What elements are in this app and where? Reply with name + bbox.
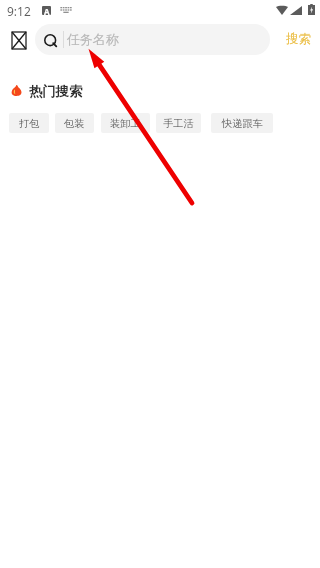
staticText: 打包 (19, 117, 40, 130)
button[interactable]: 装卸工 (101, 113, 150, 133)
button[interactable]: 搜索 (280, 25, 316, 53)
button[interactable]: Back (6, 26, 31, 54)
button[interactable]: 任务名称 (35, 24, 270, 55)
button[interactable]: 手工活 (156, 113, 201, 133)
staticText: 任务名称 (67, 32, 119, 48)
staticText: 快递跟车 (222, 117, 263, 130)
staticText: A (44, 6, 50, 15)
staticText: 装卸工 (110, 117, 141, 130)
staticText: 包装 (64, 117, 85, 130)
button[interactable]: 包装 (55, 113, 94, 133)
staticText: 热门搜索 (29, 83, 83, 100)
staticText: 9:12 (7, 3, 31, 19)
staticText: 搜索 (286, 31, 311, 47)
button[interactable]: 打包 (9, 113, 49, 133)
staticText: 手工活 (163, 117, 194, 130)
button[interactable]: 快递跟车 (211, 113, 273, 133)
